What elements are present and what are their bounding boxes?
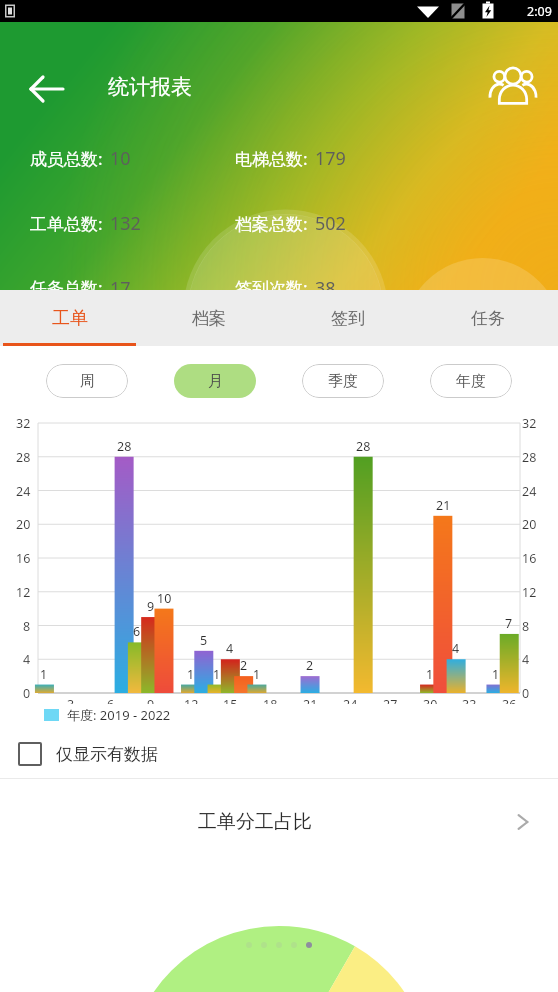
- staticText: 27: [383, 696, 398, 704]
- button[interactable]: 月: [174, 364, 256, 398]
- staticText: 179: [315, 146, 346, 171]
- staticText: 工单分工占比: [198, 810, 312, 834]
- staticText: 2: [306, 657, 314, 674]
- staticText: 18: [263, 696, 278, 704]
- staticText: 28: [356, 438, 371, 455]
- staticText: 月: [208, 372, 223, 391]
- staticText: 32: [16, 415, 31, 432]
- staticText: 17: [110, 276, 131, 290]
- staticText: 1: [187, 666, 195, 683]
- staticText: 21: [436, 497, 451, 514]
- staticText: 签到次数:: [235, 276, 308, 290]
- staticText: 年度: [456, 372, 486, 391]
- button[interactable]: 签到: [278, 290, 418, 346]
- staticText: 38: [315, 276, 336, 290]
- staticText: 4: [23, 651, 31, 668]
- staticText: 1: [426, 666, 434, 683]
- button[interactable]: Back: [20, 62, 74, 116]
- staticText: 28: [16, 449, 31, 466]
- staticText: 任务总数:: [30, 276, 103, 290]
- staticText: 1: [253, 666, 261, 683]
- staticText: 3: [67, 696, 75, 704]
- staticText: 12: [522, 584, 537, 601]
- staticText: 24: [343, 696, 358, 704]
- button[interactable]: 任务: [418, 290, 558, 346]
- staticText: 132: [110, 211, 141, 236]
- button[interactable]: 工单分工占比: [0, 809, 558, 835]
- staticText: 10: [110, 146, 131, 171]
- staticText: 28: [522, 449, 537, 466]
- staticText: 4: [452, 640, 460, 657]
- staticText: 1: [213, 666, 221, 683]
- staticText: 1: [492, 666, 500, 683]
- staticText: 36: [502, 696, 517, 704]
- staticText: 2:09: [527, 3, 552, 20]
- button[interactable]: 档案: [139, 290, 278, 346]
- staticText: 24: [522, 483, 537, 500]
- staticText: 4: [226, 640, 234, 657]
- staticText: 9: [147, 696, 155, 704]
- staticText: 12: [16, 584, 31, 601]
- staticText: 6: [133, 623, 141, 640]
- staticText: 0: [522, 685, 530, 702]
- button[interactable]: 季度: [302, 364, 384, 398]
- staticText: 30: [423, 696, 438, 704]
- staticText: 签到: [331, 308, 365, 329]
- staticText: 年度: 2019 - 2022: [67, 706, 171, 724]
- staticText: 1: [40, 666, 48, 683]
- button[interactable]: 年度: [430, 364, 512, 398]
- staticText: 6: [107, 696, 115, 704]
- staticText: 季度: [328, 372, 358, 391]
- staticText: 4: [522, 651, 530, 668]
- staticText: 任务: [471, 308, 505, 329]
- staticText: 33: [462, 696, 477, 704]
- staticText: 2: [240, 657, 248, 674]
- staticText: 8: [522, 618, 530, 635]
- staticText: 档案总数:: [235, 212, 308, 235]
- staticText: 9: [147, 598, 155, 615]
- staticText: 工单: [52, 307, 88, 330]
- staticText: 20: [16, 516, 31, 533]
- staticText: 28: [117, 438, 132, 455]
- staticText: 统计报表: [108, 74, 192, 100]
- staticText: 仅显示有数据: [56, 744, 158, 765]
- staticText: 档案: [192, 308, 226, 329]
- staticText: 24: [16, 483, 31, 500]
- staticText: 工单总数:: [30, 212, 103, 235]
- button[interactable]: 仅显示有数据: [18, 742, 558, 766]
- staticText: 5: [200, 632, 208, 649]
- staticText: 周: [80, 372, 95, 391]
- staticText: 15: [223, 696, 238, 704]
- other: More: [510, 809, 536, 835]
- staticText: 502: [315, 211, 346, 236]
- staticText: 电梯总数:: [235, 147, 308, 170]
- staticText: 成员总数:: [30, 147, 103, 170]
- staticText: 8: [23, 618, 31, 635]
- staticText: 12: [184, 696, 199, 704]
- staticText: 7: [505, 615, 513, 632]
- staticText: 32: [522, 415, 537, 432]
- staticText: 16: [522, 550, 537, 567]
- staticText: 21: [303, 696, 318, 704]
- staticText: 10: [157, 590, 172, 607]
- staticText: 0: [23, 685, 31, 702]
- staticText: 16: [16, 550, 31, 567]
- staticText: 20: [522, 516, 537, 533]
- button[interactable]: Members: [484, 58, 542, 116]
- button[interactable]: 周: [46, 364, 128, 398]
- button[interactable]: 工单: [0, 290, 139, 346]
